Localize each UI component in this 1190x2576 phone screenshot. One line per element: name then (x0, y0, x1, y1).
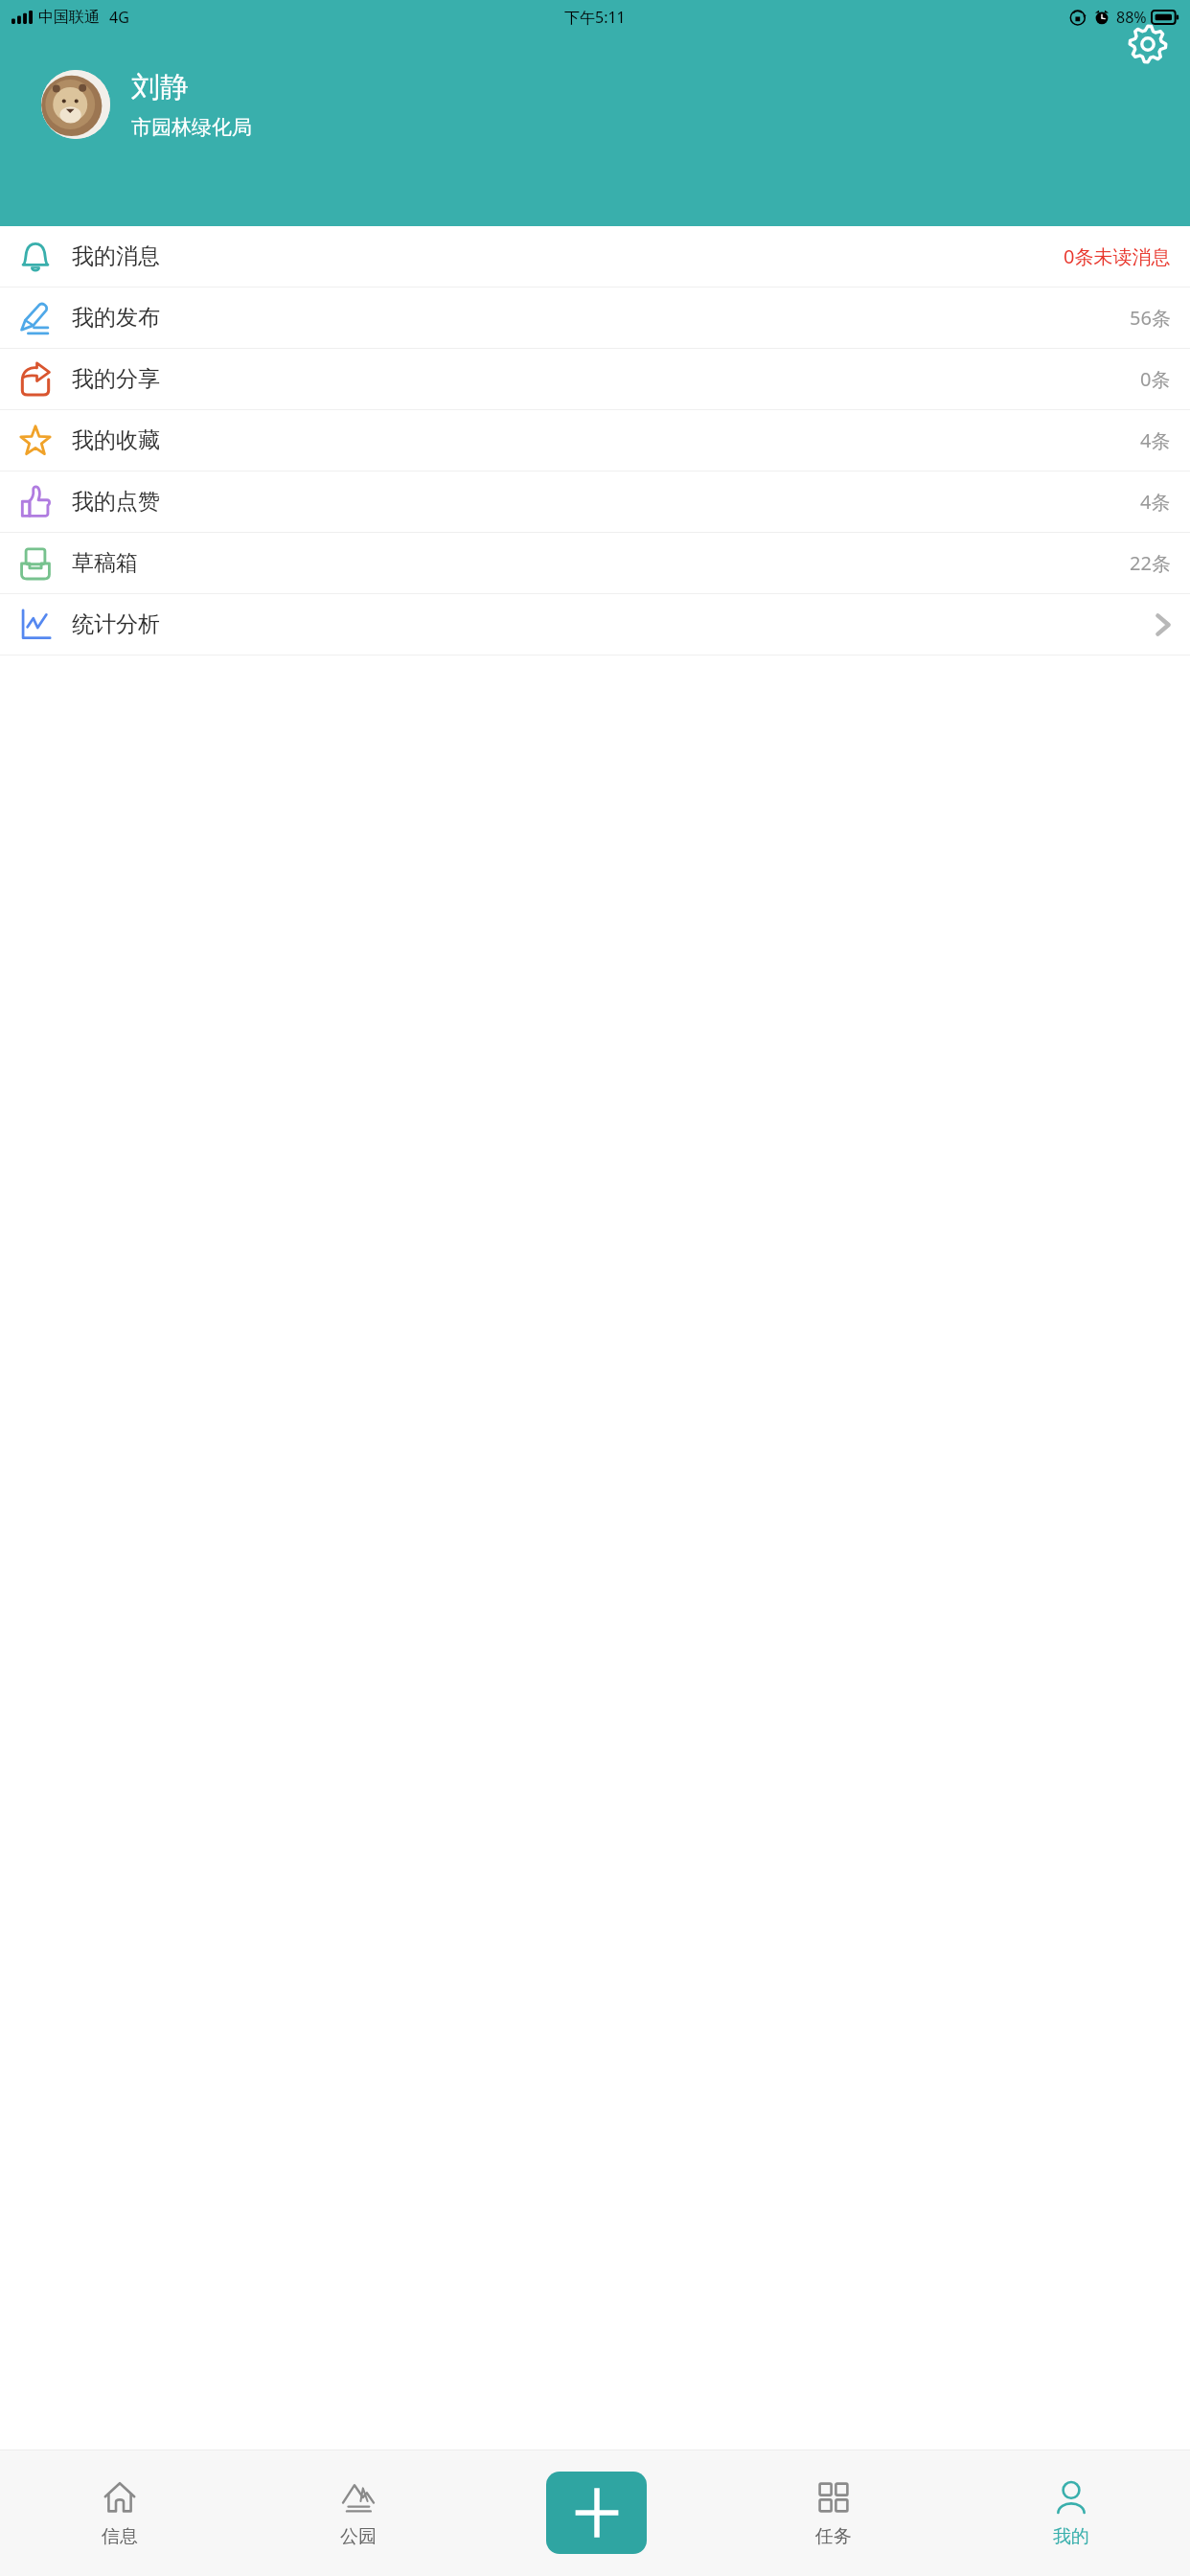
staticText: 我的点赞 (72, 488, 160, 516)
staticText: 56条 (1130, 305, 1171, 331)
staticText: 我的 (1053, 2525, 1089, 2548)
button[interactable]: 我的点赞 (0, 471, 1190, 532)
button[interactable]: Settings (1121, 17, 1175, 71)
staticText: 公园 (340, 2525, 377, 2548)
staticText: 0条 (1140, 366, 1171, 392)
staticText: 88% (1116, 7, 1147, 28)
staticText: 中国联通 (38, 8, 100, 27)
button[interactable]: 任务 (715, 2449, 952, 2576)
staticText: 4条 (1140, 489, 1171, 515)
button[interactable]: 刘静 (41, 69, 252, 140)
staticText: 统计分析 (72, 610, 160, 638)
staticText: 4条 (1140, 427, 1171, 453)
staticText: 下午5:11 (564, 7, 626, 28)
button[interactable]: 我的消息 (0, 226, 1190, 287)
staticText: 我的收藏 (72, 426, 160, 454)
button[interactable]: 信息 (0, 2449, 239, 2576)
button[interactable]: 我的 (952, 2449, 1190, 2576)
button[interactable]: 我的收藏 (0, 410, 1190, 471)
button[interactable]: 我的发布 (0, 287, 1190, 348)
staticText: 0条未读消息 (1064, 243, 1171, 269)
staticText: 信息 (102, 2525, 138, 2548)
button[interactable]: 统计分析 (0, 594, 1190, 655)
staticText: 4G (109, 7, 129, 28)
staticText: 任务 (815, 2525, 852, 2548)
button[interactable]: 我的分享 (0, 349, 1190, 409)
staticText: 我的分享 (72, 365, 160, 393)
staticText: 我的消息 (72, 242, 160, 270)
staticText: 刘静 (131, 69, 189, 105)
button[interactable]: Add (546, 2472, 647, 2554)
staticText: 市园林绿化局 (131, 115, 252, 140)
staticText: 我的发布 (72, 304, 160, 332)
staticText: 草稿箱 (72, 549, 138, 577)
button[interactable]: 公园 (239, 2449, 477, 2576)
staticText: 22条 (1130, 550, 1171, 576)
button[interactable]: 草稿箱 (0, 533, 1190, 593)
